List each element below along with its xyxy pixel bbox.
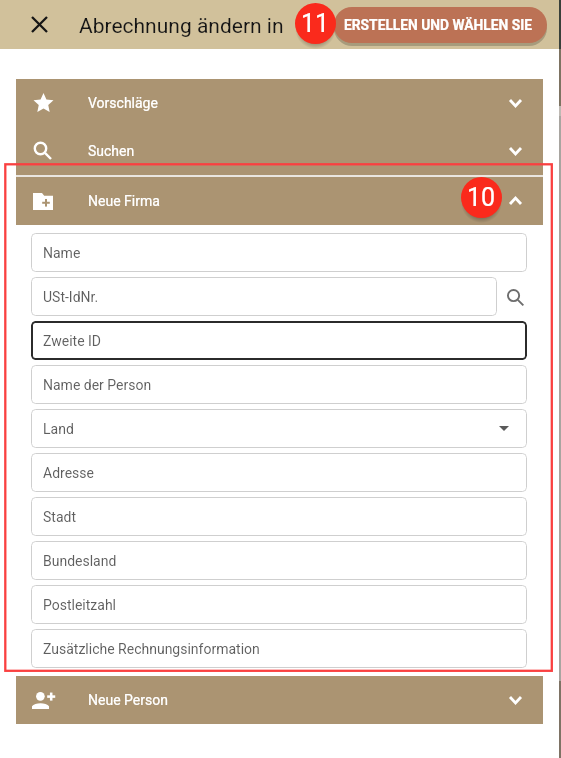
staticText: Stadt [43, 509, 76, 525]
staticText: Land [43, 421, 74, 437]
button[interactable]: Land [31, 409, 527, 448]
staticText: Adresse [43, 465, 94, 481]
button[interactable]: USt-IdNr. [31, 277, 497, 316]
button[interactable]: Vorschläge [16, 79, 543, 127]
button[interactable]: Zusätzliche Rechnungsinformation [31, 629, 527, 668]
staticText: Name der Person [43, 377, 152, 393]
staticText: Zweite ID [43, 333, 102, 349]
staticText: USt-IdNr. [43, 289, 99, 305]
button[interactable]: Stadt [31, 497, 527, 536]
staticText: ERSTELLEN UND WÄHLEN SIE [344, 17, 532, 33]
staticText: Postleitzahl [43, 597, 117, 613]
staticText: Neue Person [88, 692, 168, 708]
button[interactable]: Neue Person [16, 676, 543, 724]
button[interactable]: Bundesland [31, 541, 527, 580]
button[interactable]: Close [25, 10, 53, 38]
staticText: 11 [301, 9, 330, 38]
staticText: Suchen [88, 143, 135, 159]
staticText: Neue Firma [88, 193, 160, 209]
button[interactable]: Search [497, 278, 533, 316]
button[interactable]: Name der Person [31, 365, 527, 404]
staticText: Name [43, 245, 81, 261]
staticText: Zusätzliche Rechnungsinformation [43, 641, 260, 657]
button[interactable]: ERSTELLEN UND WÄHLEN SIE [334, 7, 547, 43]
staticText: Vorschläge [88, 95, 158, 111]
button[interactable]: Adresse [31, 453, 527, 492]
staticText: Bundesland [43, 553, 117, 569]
button[interactable]: Suchen [16, 127, 543, 175]
button[interactable]: Zweite ID [31, 321, 527, 360]
button[interactable]: Name [31, 233, 527, 272]
button[interactable]: Neue Firma [16, 177, 543, 225]
button[interactable]: Postleitzahl [31, 585, 527, 624]
staticText: Abrechnung ändern in [79, 14, 284, 39]
staticText: 10 [467, 183, 496, 212]
